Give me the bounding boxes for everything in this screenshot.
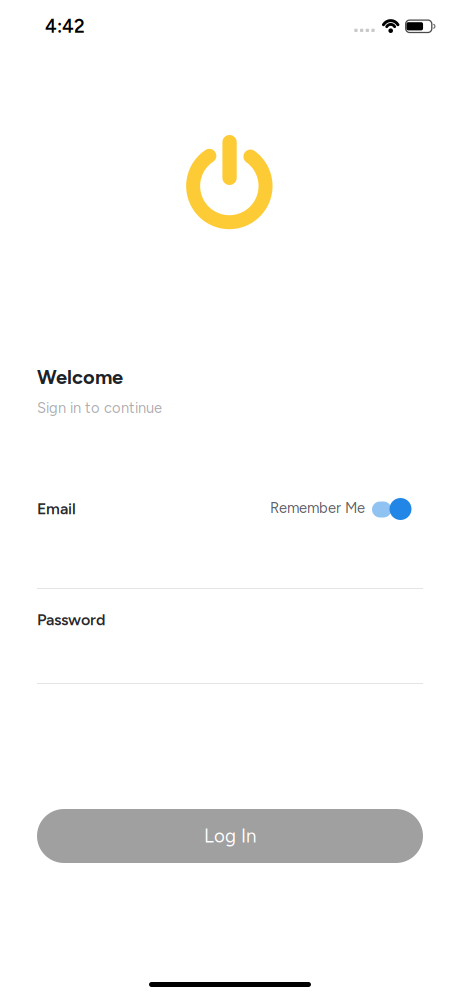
- staticText: Sign in to continue: [37, 399, 162, 417]
- staticText: Remember Me: [270, 499, 365, 517]
- staticText: 4:42: [45, 15, 85, 37]
- staticText: Email: [37, 499, 76, 518]
- staticText: Password: [37, 610, 105, 629]
- button[interactable]: Log In: [37, 809, 423, 863]
- staticText: Welcome: [37, 365, 123, 389]
- staticText: Log In: [204, 825, 256, 847]
